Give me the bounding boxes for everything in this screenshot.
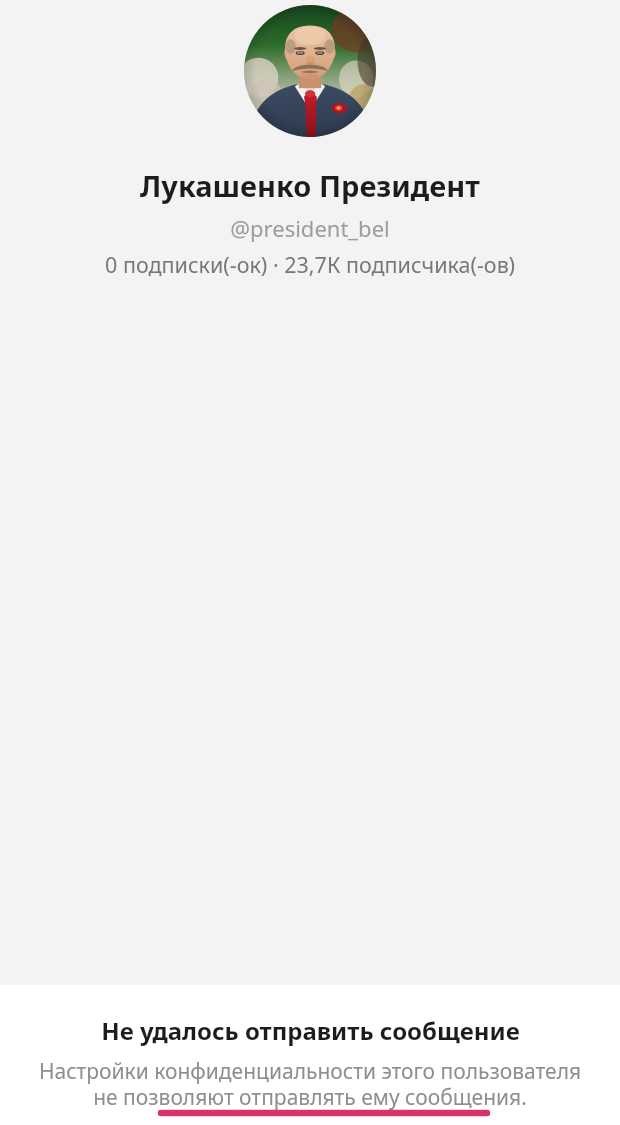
staticText: @president_bel	[230, 213, 390, 243]
staticText: Не удалось отправить сообщение	[101, 1014, 520, 1047]
staticText: Лукашенко Президент	[140, 166, 480, 205]
staticText: Настройки конфиденциальности этого польз…	[24, 1057, 596, 1111]
button[interactable]: Фото профиля	[244, 5, 376, 137]
staticText: 0 подписки(-ок) · 23,7К подписчика(-ов)	[105, 250, 515, 279]
